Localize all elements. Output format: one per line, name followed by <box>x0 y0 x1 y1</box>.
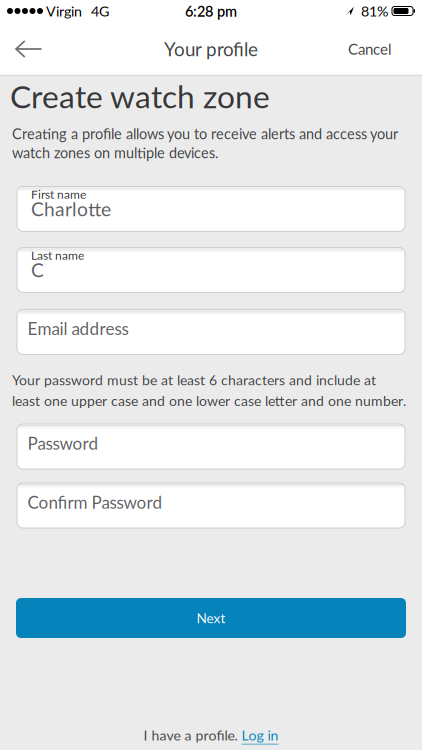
staticText: Last name <box>31 248 84 262</box>
staticText: Your password must be at least 6 charact… <box>12 371 406 409</box>
staticText: Create watch zone <box>10 77 270 115</box>
button[interactable]: Back <box>0 26 42 71</box>
staticText: Charlotte <box>31 197 111 220</box>
staticText: First name <box>31 187 86 201</box>
staticText: I have a profile. <box>143 727 237 743</box>
staticText: Your profile <box>164 38 258 60</box>
staticText: 6:28 pm <box>185 2 237 20</box>
staticText: Virgin <box>46 2 82 19</box>
staticText: 4G <box>91 2 109 19</box>
staticText: Password <box>27 433 98 453</box>
staticText: Email address <box>27 318 128 339</box>
staticText: Cancel <box>348 40 392 58</box>
staticText: Confirm Password <box>27 492 162 512</box>
staticText: Creating a profile allows you to receive… <box>12 125 398 161</box>
button[interactable]: Cancel <box>348 24 422 74</box>
staticText: Next <box>196 610 225 626</box>
button[interactable]: Email address <box>17 309 405 354</box>
button[interactable]: Password <box>17 424 405 469</box>
staticText: C <box>31 258 44 281</box>
button[interactable]: Last name <box>17 247 405 292</box>
staticText: 81% <box>361 2 388 19</box>
button[interactable]: Confirm Password <box>17 483 405 528</box>
button[interactable]: First name <box>17 186 405 231</box>
button[interactable]: Next <box>16 598 406 638</box>
button[interactable]: Log in <box>241 727 278 743</box>
staticText: Log in <box>241 727 278 743</box>
